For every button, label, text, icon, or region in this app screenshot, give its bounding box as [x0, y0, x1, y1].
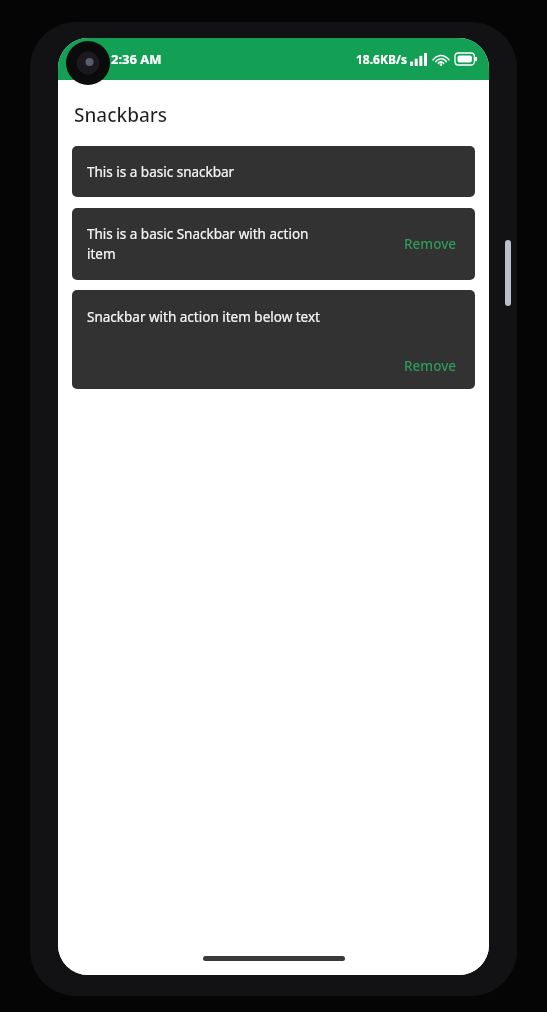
staticText: This is a basic snackbar — [87, 163, 235, 181]
staticText: Remove — [404, 235, 456, 253]
button[interactable]: This is a basic Snackbar with action ite… — [72, 208, 475, 280]
button[interactable]: Snackbar with action item below text — [72, 290, 475, 389]
staticText: Remove — [404, 357, 456, 375]
staticText: This is a basic Snackbar with action ite… — [87, 225, 400, 263]
staticText: 18.6KB/s — [356, 51, 407, 67]
button[interactable]: This is a basic snackbar — [72, 146, 475, 197]
button[interactable]: Remove — [400, 353, 460, 379]
button[interactable]: Remove — [400, 229, 460, 259]
staticText: 2:36 AM — [111, 50, 162, 68]
staticText: Snackbar with action item below text — [87, 308, 320, 326]
staticText: Snackbars — [74, 102, 168, 128]
